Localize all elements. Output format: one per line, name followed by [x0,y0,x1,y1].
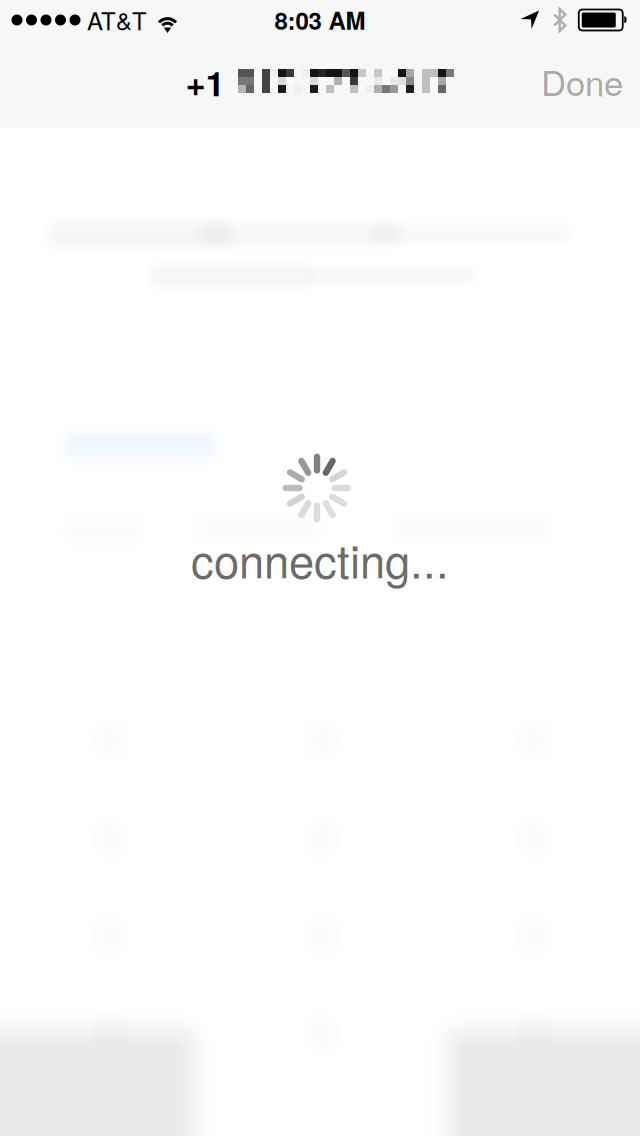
staticText: 8:03 AM [274,3,365,37]
staticText: Done [541,56,623,106]
button[interactable]: Done [522,37,640,125]
staticText: connecting... [191,526,449,591]
staticText: +1 [185,57,224,107]
staticText: AT&T [87,3,147,37]
